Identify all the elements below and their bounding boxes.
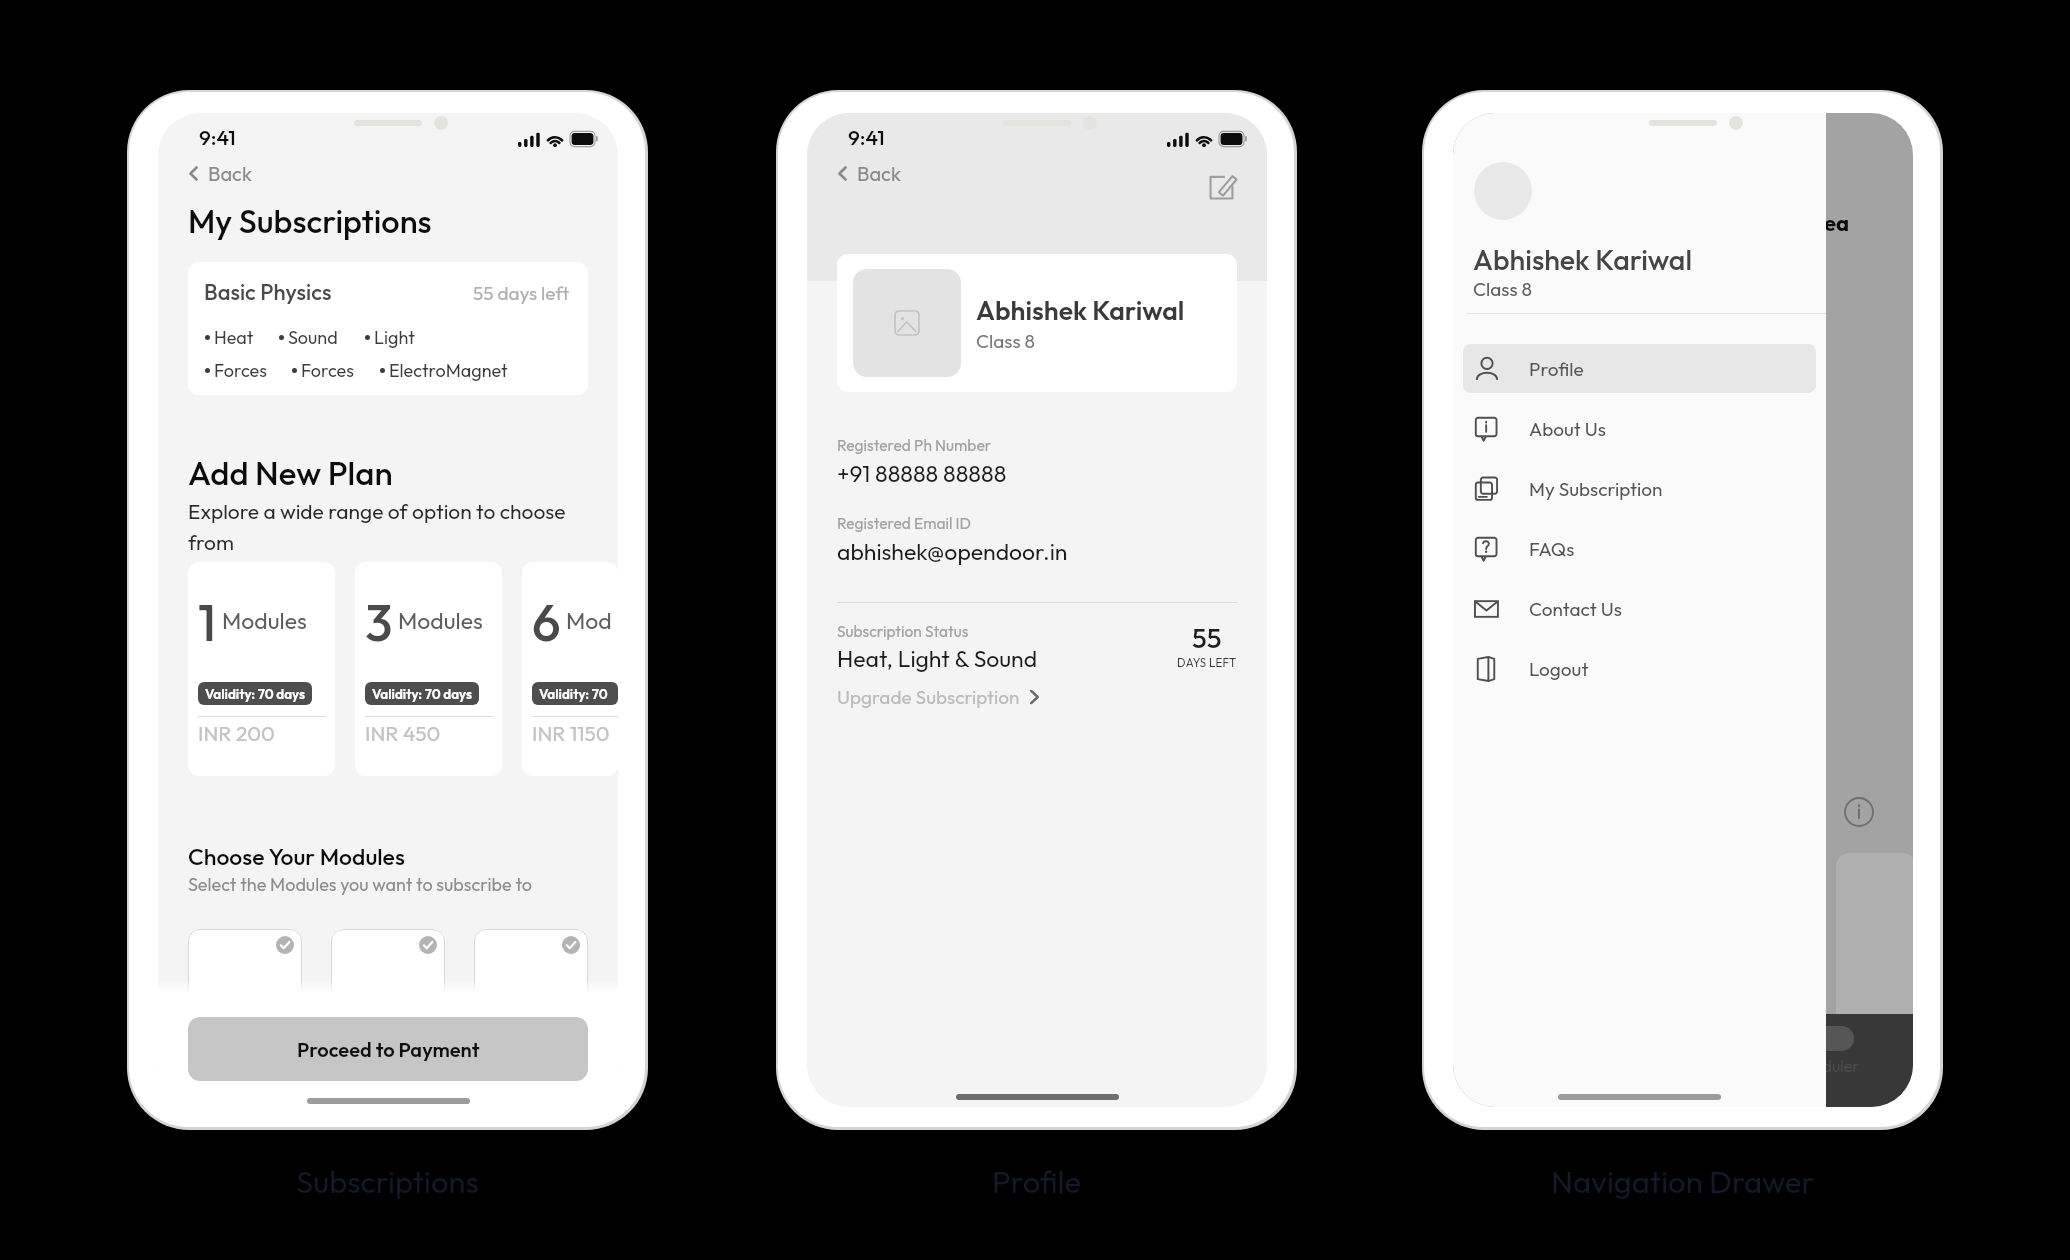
button[interactable]: Contact Us — [1463, 584, 1816, 633]
staticText: Class 8 — [1473, 277, 1532, 301]
staticText: Heat — [214, 326, 254, 349]
button[interactable]: Back — [186, 157, 258, 190]
staticText: Profile — [1529, 357, 1584, 381]
staticText: 55 — [1192, 621, 1222, 655]
staticText: Forces — [301, 359, 354, 382]
button[interactable]: 1 — [188, 562, 335, 776]
staticText: Contact Us — [1529, 597, 1622, 621]
staticText: Validity: 70 days — [539, 685, 611, 702]
button[interactable]: Proceed to Payment — [188, 1017, 588, 1081]
button[interactable]: 3 — [355, 562, 502, 776]
staticText: Sound — [288, 326, 338, 349]
staticText: 6 — [532, 590, 561, 654]
staticText: My Subscriptions — [188, 200, 432, 241]
staticText: INR 1150 — [532, 720, 610, 746]
staticText: Abhishek Kariwal — [976, 293, 1185, 326]
staticText: Modules — [566, 606, 618, 635]
staticText: Basic Physics — [204, 278, 332, 306]
staticText: Navigation Drawer — [1551, 1162, 1815, 1201]
staticText: 9:41 — [199, 124, 236, 150]
staticText: eduler — [1814, 1056, 1859, 1076]
button[interactable]: Profile — [1463, 344, 1816, 393]
button[interactable] — [331, 929, 445, 1029]
staticText: Forces — [214, 359, 267, 382]
staticText: DAYS LEFT — [1177, 655, 1237, 669]
button[interactable]: Abhishek Kariwal — [837, 254, 1237, 392]
staticText: Explore a wide range of option to choose… — [188, 498, 568, 555]
button[interactable]: About Us — [1463, 404, 1816, 453]
button[interactable]: Upgrade Subscription — [837, 685, 1040, 709]
staticText: Heat, Light & Sound — [837, 644, 1038, 673]
staticText: Choose Your Modules — [188, 842, 405, 871]
staticText: Registered Email ID — [837, 513, 972, 533]
button[interactable] — [474, 929, 588, 1029]
staticText: abhishek@opendoor.in — [837, 537, 1068, 566]
button[interactable]: Back — [835, 157, 907, 190]
staticText: Class 8 — [976, 329, 1035, 353]
staticText: 9:41 — [848, 124, 885, 150]
staticText: Modules — [222, 606, 307, 635]
button[interactable] — [188, 929, 302, 1029]
staticText: Registered Ph Number — [837, 435, 992, 455]
button[interactable]: Logout — [1463, 644, 1816, 693]
staticText: ea — [1824, 209, 1850, 237]
button[interactable]: Basic Physics — [188, 262, 588, 395]
staticText: 55 days left — [473, 281, 570, 305]
staticText: INR 200 — [198, 720, 275, 746]
staticText: About Us — [1529, 417, 1606, 441]
button[interactable]: Edit profile — [1205, 170, 1239, 204]
staticText: Light — [374, 326, 415, 349]
button[interactable]: FAQs — [1463, 524, 1816, 573]
staticText: Add New Plan — [188, 452, 393, 494]
staticText: Validity: 70 days — [372, 685, 472, 702]
staticText: Select the Modules you want to subscribe… — [188, 873, 532, 896]
staticText: FAQs — [1529, 537, 1575, 561]
staticText: Subscription Status — [837, 621, 969, 641]
staticText: INR 450 — [365, 720, 441, 746]
staticText: +91 88888 88888 — [837, 459, 1007, 488]
staticText: Back — [208, 161, 252, 186]
staticText: Proceed to Payment — [297, 1037, 480, 1062]
staticText: Validity: 70 days — [205, 685, 305, 702]
staticText: Upgrade Subscription — [837, 685, 1020, 709]
button[interactable]: My Subscription — [1463, 464, 1816, 513]
staticText: Abhishek Kariwal — [1473, 241, 1692, 277]
staticText: 1 — [198, 590, 217, 654]
staticText: Profile — [992, 1162, 1082, 1201]
staticText: Logout — [1529, 657, 1589, 681]
staticText: 3 — [365, 590, 393, 654]
staticText: My Subscription — [1529, 477, 1663, 501]
staticText: Back — [857, 161, 901, 186]
staticText: Subscriptions — [296, 1162, 479, 1201]
button[interactable]: 6 — [522, 562, 618, 776]
staticText: ElectroMagnet — [389, 359, 508, 382]
staticText: Modules — [398, 606, 483, 635]
